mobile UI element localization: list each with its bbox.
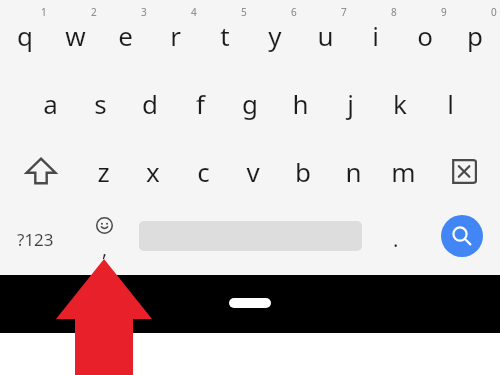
button[interactable]: s (75, 70, 125, 136)
staticText: c (197, 154, 210, 189)
button[interactable]: e (100, 2, 150, 68)
button[interactable]: p (450, 2, 500, 68)
staticText: ?123 (17, 228, 54, 251)
staticText: 2 (91, 5, 97, 19)
staticText: d (142, 86, 158, 121)
button[interactable]: Emoji and comma (78, 206, 130, 272)
button[interactable]: i (350, 2, 400, 68)
button[interactable]: j (325, 70, 375, 136)
button[interactable]: a (25, 70, 75, 136)
staticText: 6 (291, 5, 297, 19)
button[interactable]: f (175, 70, 225, 136)
button[interactable]: y (250, 2, 300, 68)
staticText: l (447, 86, 454, 121)
button[interactable]: Search (441, 215, 483, 257)
staticText: h (292, 86, 309, 121)
button[interactable]: ?123 (0, 206, 70, 272)
staticText: a (43, 86, 58, 121)
staticText: u (317, 18, 334, 53)
staticText: b (295, 154, 311, 189)
staticText: 7 (341, 5, 347, 19)
staticText: 1 (41, 5, 47, 19)
staticText: p (467, 18, 483, 53)
button[interactable]: n (328, 138, 378, 204)
button[interactable]: Home (229, 298, 271, 308)
button[interactable]: b (278, 138, 328, 204)
button[interactable]: Backspace (422, 138, 497, 204)
staticText: q (17, 18, 33, 53)
staticText: n (345, 154, 362, 189)
button[interactable]: q (0, 2, 50, 68)
button[interactable]: r (150, 2, 200, 68)
staticText: w (65, 18, 86, 53)
staticText: x (146, 154, 160, 189)
button[interactable]: h (275, 70, 325, 136)
staticText: s (94, 86, 107, 121)
button[interactable]: u (300, 2, 350, 68)
staticText: 0 (491, 5, 497, 19)
staticText: i (372, 18, 379, 53)
staticText: 3 (141, 5, 147, 19)
button[interactable]: o (400, 2, 450, 68)
staticText: v (246, 154, 260, 189)
button[interactable]: x (128, 138, 178, 204)
staticText: j (347, 86, 354, 121)
staticText: o (417, 18, 433, 53)
button[interactable]: v (228, 138, 278, 204)
staticText: , (102, 236, 108, 262)
button[interactable]: . (372, 206, 420, 272)
staticText: 8 (391, 5, 397, 19)
staticText: 5 (241, 5, 247, 19)
staticText: m (391, 154, 416, 189)
button[interactable]: c (178, 138, 228, 204)
staticText: t (220, 18, 230, 53)
staticText: r (170, 18, 181, 53)
staticText: . (393, 226, 399, 253)
button[interactable]: l (425, 70, 475, 136)
staticText: z (97, 154, 110, 189)
staticText: g (242, 86, 258, 121)
staticText: 4 (191, 5, 197, 19)
staticText: f (196, 86, 205, 121)
staticText: k (393, 86, 407, 121)
button[interactable]: z (78, 138, 128, 204)
button[interactable]: d (125, 70, 175, 136)
button[interactable]: m (378, 138, 428, 204)
button[interactable]: t (200, 2, 250, 68)
button[interactable]: k (375, 70, 425, 136)
staticText: y (268, 18, 282, 53)
staticText: e (118, 18, 133, 53)
button[interactable]: Shift (3, 138, 78, 204)
button[interactable]: g (225, 70, 275, 136)
button[interactable]: w (50, 2, 100, 68)
staticText: 9 (441, 5, 447, 19)
